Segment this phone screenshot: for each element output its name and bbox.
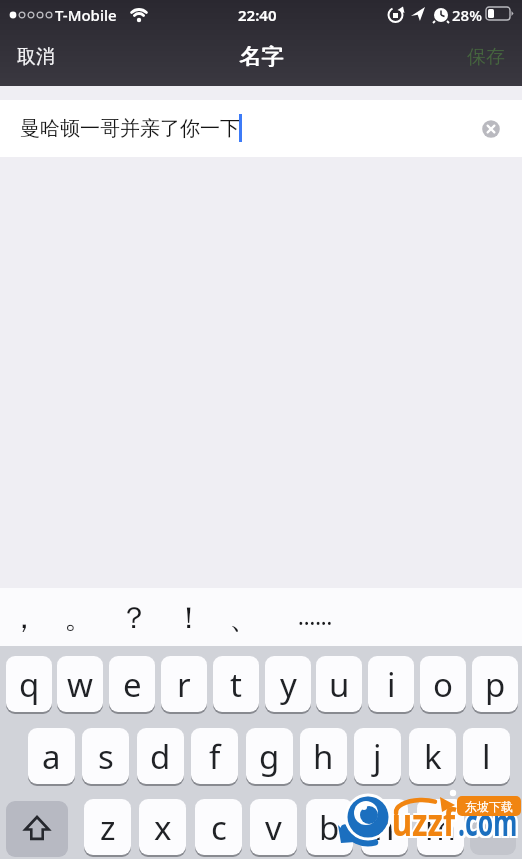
button[interactable]: b (306, 799, 353, 855)
staticText: g (259, 734, 280, 779)
staticText: uzzf (392, 796, 455, 846)
staticText: 曼哈顿一哥并亲了你一下 (20, 116, 240, 141)
staticText: 东坡下载 (465, 799, 513, 814)
staticText: d (150, 734, 171, 779)
staticText: ！ (174, 599, 204, 637)
button[interactable]: k (409, 728, 456, 784)
button[interactable]: 。 (57, 589, 101, 647)
button[interactable] (470, 799, 516, 855)
staticText: e (123, 662, 142, 707)
button[interactable]: w (57, 656, 103, 712)
staticText: uzzf (390, 796, 453, 846)
button[interactable]: l (463, 728, 510, 784)
staticText: 。 (64, 599, 94, 637)
button[interactable]: i (368, 656, 414, 712)
staticText: o (433, 662, 453, 707)
button[interactable]: d (137, 728, 184, 784)
button[interactable]: f (191, 728, 238, 784)
button[interactable]: 、 (222, 589, 266, 647)
button[interactable]: o (420, 656, 466, 712)
button[interactable]: j (354, 728, 401, 784)
staticText: b (319, 805, 340, 850)
button[interactable]: q (6, 656, 52, 712)
button[interactable]: ？ (112, 589, 156, 647)
button[interactable]: t (213, 656, 259, 712)
button[interactable]: 东坡下载 (457, 796, 521, 816)
staticText: ...... (298, 603, 333, 632)
staticText: .com (456, 797, 516, 849)
button[interactable]: ！ (167, 589, 211, 647)
button[interactable]: p (472, 656, 518, 712)
staticText: uzzf (394, 796, 457, 846)
button[interactable]: s (82, 728, 129, 784)
staticText: .com (456, 795, 516, 847)
staticText: 名字 (239, 43, 283, 71)
button[interactable]: 保存 (432, 28, 522, 86)
staticText: z (100, 805, 116, 850)
staticText: u (329, 662, 350, 707)
staticText: uzzf (392, 794, 455, 844)
staticText: 名字 (240, 43, 284, 71)
button[interactable]: x (139, 799, 186, 855)
button[interactable]: ， (2, 589, 46, 647)
staticText: l (482, 734, 491, 779)
staticText: ， (9, 599, 39, 637)
staticText: 、 (229, 599, 259, 637)
button[interactable] (6, 801, 68, 857)
staticText: k (424, 734, 442, 779)
button[interactable]: c (195, 799, 242, 855)
staticText: 取消 (17, 45, 55, 69)
button[interactable]: n (361, 799, 408, 855)
button[interactable]: m (417, 799, 464, 855)
staticText: n (374, 805, 395, 850)
staticText: h (313, 734, 334, 779)
button[interactable]: g (246, 728, 293, 784)
staticText: s (98, 734, 114, 779)
button[interactable]: y (265, 656, 311, 712)
button[interactable]: ...... (284, 588, 346, 646)
staticText: .com (460, 797, 520, 849)
staticText: r (177, 662, 191, 707)
staticText: v (265, 805, 282, 850)
staticText: .com (458, 793, 518, 845)
staticText: j (373, 734, 382, 779)
staticText: uzzf (390, 798, 453, 848)
staticText: a (42, 734, 61, 779)
staticText: q (19, 662, 40, 707)
staticText: 22:40 (238, 5, 277, 25)
button[interactable]: v (250, 799, 297, 855)
staticText: i (387, 662, 396, 707)
staticText: t (230, 662, 242, 707)
staticText: w (67, 662, 93, 707)
staticText: T-Mobile (55, 5, 117, 25)
staticText: x (154, 805, 172, 850)
button[interactable]: e (109, 656, 155, 712)
staticText: 28% (452, 5, 482, 25)
staticText: uzzf (392, 798, 455, 848)
staticText: f (209, 734, 221, 779)
button[interactable]: h (300, 728, 347, 784)
button[interactable]: r (161, 656, 207, 712)
button[interactable]: 取消 (0, 28, 90, 86)
staticText: y (280, 662, 297, 707)
staticText: uzzf (394, 798, 457, 848)
staticText: p (485, 662, 506, 707)
staticText: .com (458, 795, 518, 847)
staticText: 保存 (467, 45, 505, 69)
staticText: c (211, 805, 227, 850)
button[interactable]: u (316, 656, 362, 712)
staticText: m (425, 805, 456, 850)
button[interactable]: z (84, 799, 131, 855)
button[interactable]: a (28, 728, 75, 784)
button[interactable] (482, 120, 500, 138)
staticText: ？ (119, 599, 149, 637)
staticText: .com (458, 797, 518, 849)
staticText: .com (460, 795, 520, 847)
